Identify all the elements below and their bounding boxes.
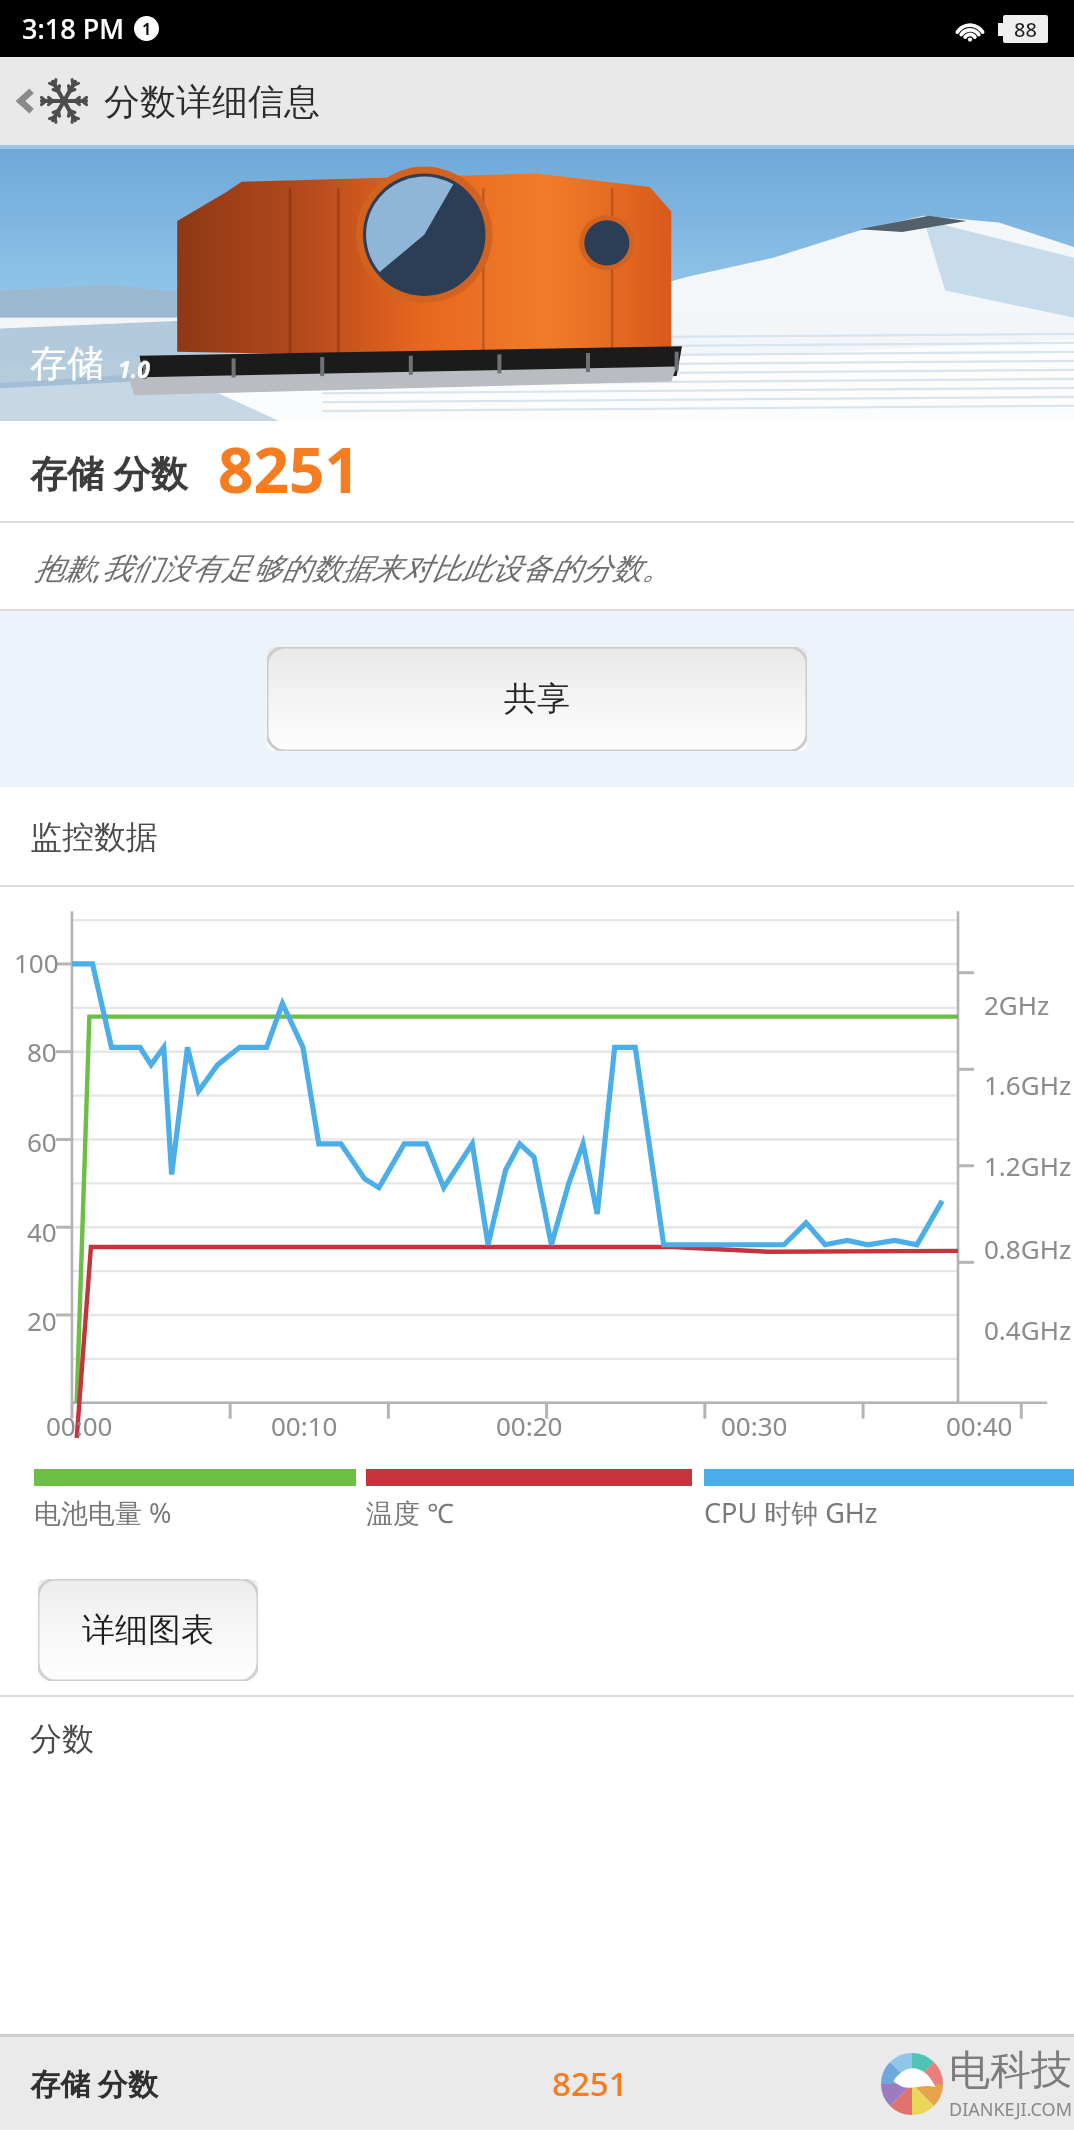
- staticText: 存储 分数: [30, 2063, 158, 2104]
- staticText: 8251: [552, 2061, 628, 2106]
- staticText: 1.2GHz: [984, 1148, 1072, 1183]
- staticText: 存储 分数: [30, 447, 188, 498]
- staticText: 0.8GHz: [984, 1231, 1072, 1266]
- staticText: 40: [27, 1214, 57, 1249]
- staticText: 60: [27, 1124, 57, 1159]
- staticText: 80: [27, 1034, 57, 1069]
- staticText: 温度 ℃: [366, 1494, 454, 1531]
- staticText: 分数: [30, 1719, 94, 1759]
- button[interactable]: 共享: [267, 647, 807, 751]
- staticText: 88: [1014, 16, 1037, 43]
- staticText: 监控数据: [30, 817, 158, 857]
- staticText: DIANKEJI.COM: [949, 2097, 1072, 2122]
- staticText: 8251: [218, 427, 360, 511]
- staticText: 0.4GHz: [984, 1312, 1072, 1347]
- staticText: 00:40: [946, 1408, 1013, 1443]
- other: Back: [12, 78, 40, 124]
- staticText: 电科技: [949, 2045, 1072, 2097]
- staticText: 1.6GHz: [984, 1067, 1072, 1102]
- staticText: 00:10: [271, 1408, 338, 1443]
- other: Wi-Fi: [954, 17, 986, 42]
- button[interactable]: Back: [0, 57, 1074, 145]
- staticText: 20: [27, 1303, 57, 1338]
- staticText: 00:30: [721, 1408, 788, 1443]
- staticText: 存储: [30, 340, 104, 387]
- staticText: 详细图表: [82, 1609, 214, 1651]
- staticText: 1: [142, 18, 152, 40]
- button[interactable]: CPU 时钟 GHz: [704, 1469, 1074, 1531]
- staticText: 共享: [504, 678, 570, 720]
- staticText: 00:00: [46, 1408, 113, 1443]
- staticText: 00:20: [496, 1408, 563, 1443]
- staticText: 100: [14, 945, 59, 980]
- button[interactable]: 详细图表: [38, 1579, 258, 1681]
- staticText: 2GHz: [984, 987, 1050, 1022]
- staticText: 3:18 PM: [22, 10, 124, 47]
- staticText: 分数详细信息: [104, 79, 320, 124]
- staticText: 电池电量 %: [34, 1494, 172, 1531]
- staticText: 抱歉,我们没有足够的数据来对比此设备的分数。: [34, 547, 672, 588]
- button[interactable]: 温度 ℃: [366, 1469, 692, 1531]
- staticText: CPU 时钟 GHz: [704, 1494, 878, 1531]
- button[interactable]: 电池电量 %: [34, 1469, 356, 1531]
- staticText: 1.0: [118, 353, 150, 384]
